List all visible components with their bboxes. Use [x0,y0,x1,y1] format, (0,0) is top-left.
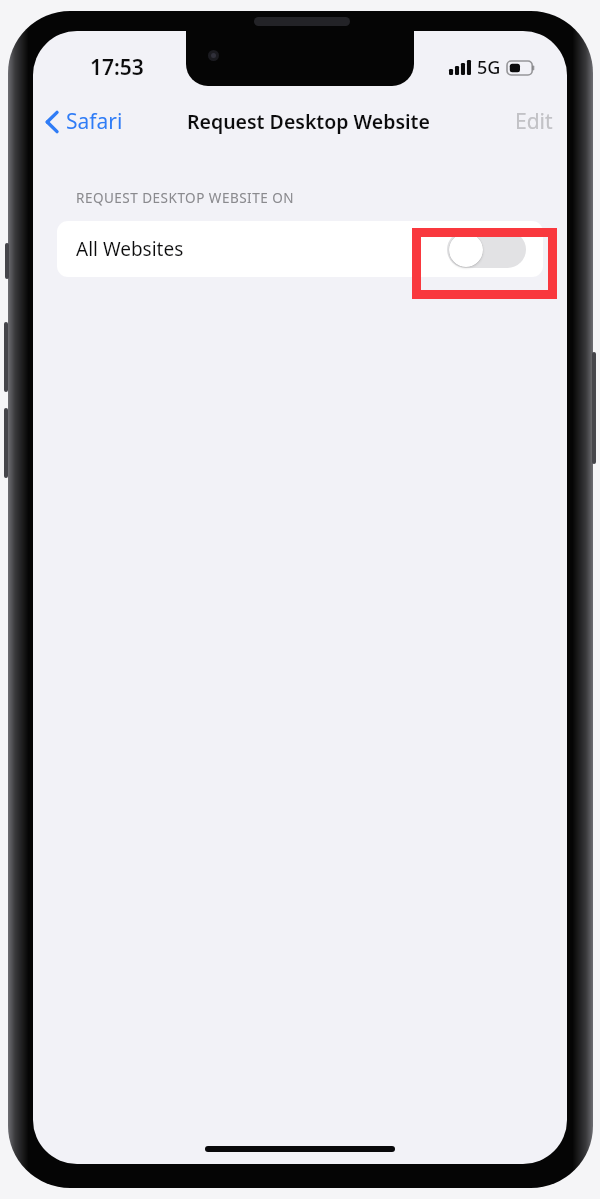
staticText: Edit [515,107,553,136]
staticText: All Websites [76,236,184,262]
staticText: Safari [66,107,123,136]
staticText: REQUEST DESKTOP WEBSITE ON [76,189,294,207]
button[interactable]: Edit [501,99,567,144]
button[interactable]: All Websites [57,221,543,277]
staticText: Request Desktop Website [187,108,430,135]
staticText: 5G [477,55,501,80]
staticText: 17:53 [90,53,144,82]
button[interactable]: Safari [33,101,131,142]
button[interactable]: All Websites toggle, off [447,231,526,268]
